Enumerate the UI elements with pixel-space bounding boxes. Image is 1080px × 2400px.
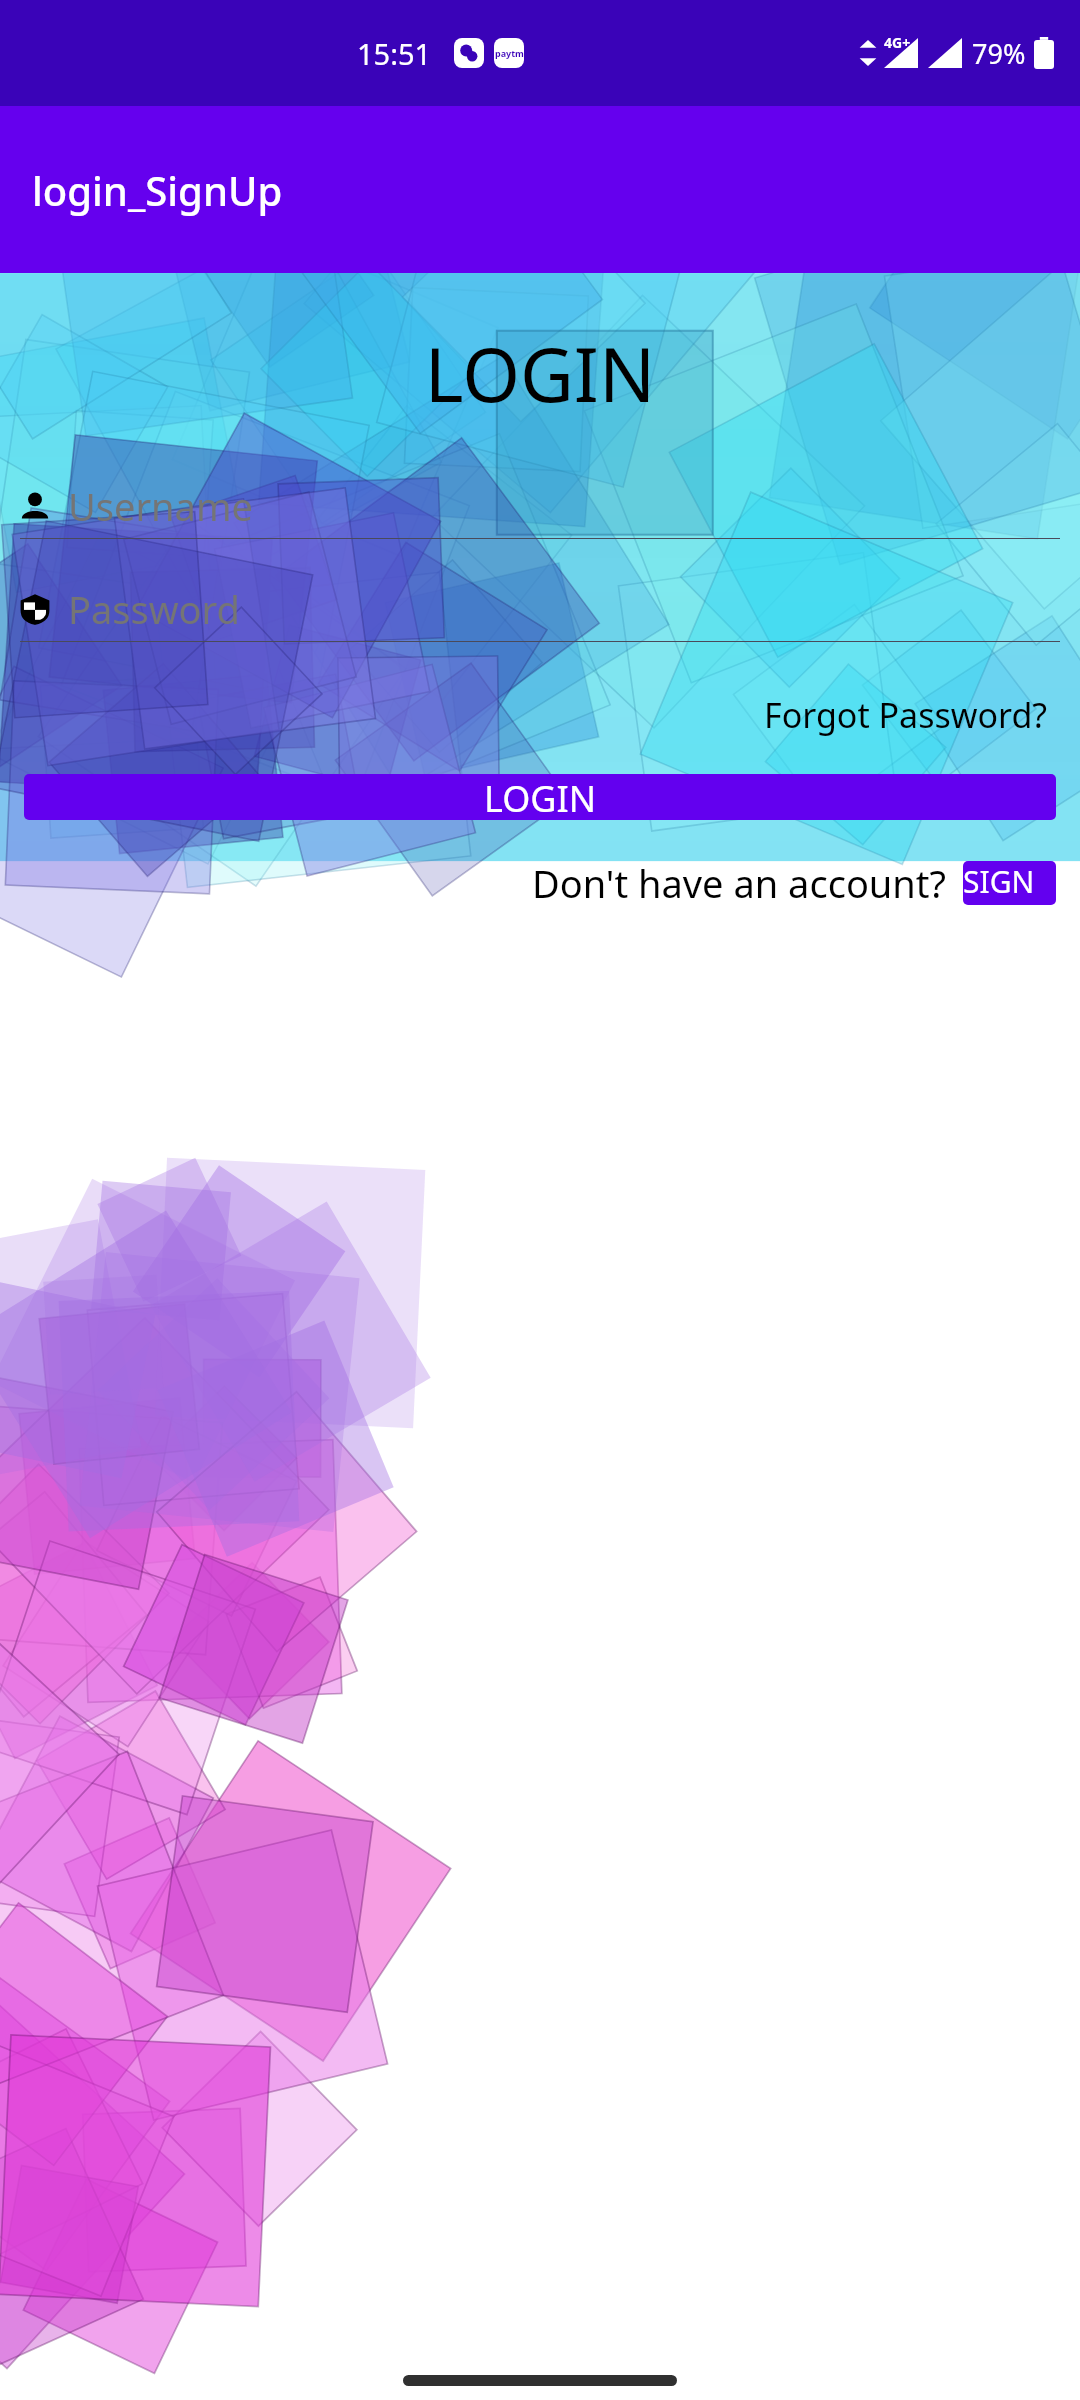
staticText: Password	[68, 583, 240, 635]
button[interactable]: Don't have an account?	[528, 853, 951, 913]
button[interactable]: Password	[20, 583, 1060, 642]
staticText: 79%	[972, 35, 1026, 72]
staticText: 15:51	[357, 34, 432, 73]
staticText: login_SignUp	[32, 163, 283, 217]
staticText: LOGIN	[0, 323, 1080, 424]
staticText: LOGIN	[484, 774, 597, 820]
staticText: SIGN UP	[963, 861, 1056, 905]
button[interactable]: LOGIN	[24, 774, 1056, 820]
button[interactable]: Username	[20, 480, 1060, 539]
button[interactable]: SIGN UP	[963, 861, 1056, 905]
staticText: paytm	[495, 47, 524, 59]
staticText: Username	[68, 480, 253, 532]
staticText: 4G+	[884, 33, 911, 52]
button[interactable]: Forgot Password?	[756, 684, 1056, 746]
